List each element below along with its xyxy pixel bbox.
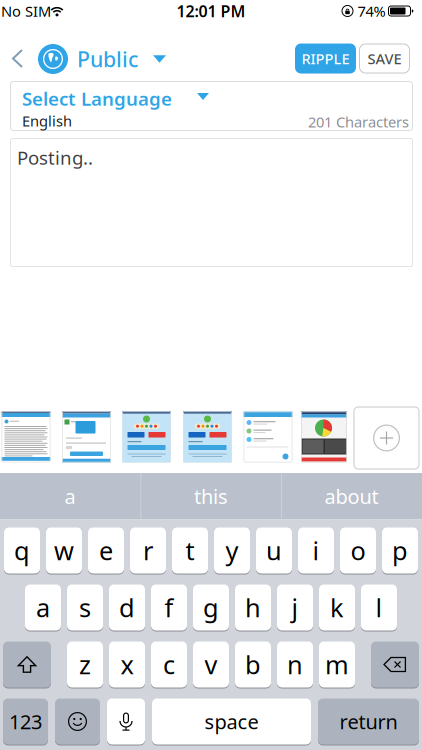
button[interactable]: k bbox=[319, 584, 355, 631]
staticText: k bbox=[330, 591, 344, 624]
button[interactable]: RIPPLE bbox=[295, 43, 356, 73]
button[interactable]: h bbox=[235, 584, 271, 631]
staticText: r bbox=[143, 534, 153, 567]
button[interactable]: o bbox=[340, 527, 376, 574]
staticText: 12:01 PM bbox=[176, 0, 245, 22]
staticText: m bbox=[325, 648, 349, 681]
button[interactable]: about bbox=[282, 473, 420, 519]
button[interactable]: Screenshot 6 bbox=[301, 411, 347, 462]
staticText: 74% bbox=[357, 1, 385, 21]
button[interactable]: Delete bbox=[371, 641, 419, 688]
staticText: f bbox=[164, 591, 173, 624]
button[interactable]: Post text bbox=[10, 138, 413, 267]
staticText: s bbox=[79, 591, 91, 624]
button[interactable]: p bbox=[382, 527, 418, 574]
button[interactable]: this bbox=[142, 473, 280, 519]
button[interactable]: x bbox=[109, 641, 145, 688]
button[interactable]: b bbox=[235, 641, 271, 688]
button[interactable]: j bbox=[277, 584, 313, 631]
button[interactable]: Screenshot 5 bbox=[243, 411, 292, 462]
button[interactable]: Back bbox=[11, 49, 24, 68]
button[interactable]: v bbox=[193, 641, 229, 688]
button[interactable]: Numbers bbox=[3, 698, 48, 745]
staticText: u bbox=[266, 534, 282, 567]
staticText: Select Language bbox=[22, 86, 172, 111]
staticText: h bbox=[245, 591, 261, 624]
button[interactable]: c bbox=[151, 641, 187, 688]
staticText: g bbox=[203, 591, 219, 624]
button[interactable]: w bbox=[46, 527, 82, 574]
button[interactable]: Public bbox=[38, 41, 166, 77]
button[interactable]: Space bbox=[152, 698, 311, 745]
button[interactable]: Dictation bbox=[107, 698, 145, 745]
button[interactable]: t bbox=[172, 527, 208, 574]
staticText: Posting.. bbox=[17, 145, 93, 170]
button[interactable]: z bbox=[67, 641, 103, 688]
staticText: j bbox=[291, 591, 298, 624]
staticText: e bbox=[99, 534, 113, 567]
button[interactable]: Screenshot 3 bbox=[122, 411, 171, 462]
staticText: a bbox=[64, 483, 75, 509]
button[interactable]: s bbox=[67, 584, 103, 631]
staticText: space bbox=[204, 708, 258, 735]
staticText: RIPPLE bbox=[301, 49, 349, 68]
staticText: b bbox=[245, 648, 261, 681]
button[interactable]: Screenshot 1 bbox=[1, 411, 50, 462]
staticText: t bbox=[185, 534, 194, 567]
staticText: a bbox=[36, 591, 50, 624]
button[interactable]: SAVE bbox=[359, 43, 410, 73]
button[interactable]: u bbox=[256, 527, 292, 574]
staticText: this bbox=[194, 483, 228, 509]
button[interactable]: e bbox=[88, 527, 124, 574]
button[interactable]: l bbox=[361, 584, 397, 631]
button[interactable]: Shift bbox=[3, 641, 51, 688]
staticText: i bbox=[312, 534, 319, 567]
button[interactable]: Screenshot 4 bbox=[183, 411, 232, 462]
staticText: v bbox=[204, 648, 217, 681]
staticText: l bbox=[375, 591, 382, 624]
staticText: English bbox=[22, 111, 72, 130]
staticText: n bbox=[287, 648, 303, 681]
button[interactable]: Add photo bbox=[353, 406, 419, 469]
staticText: w bbox=[54, 534, 74, 567]
staticText: 123 bbox=[9, 708, 42, 735]
button[interactable]: n bbox=[277, 641, 313, 688]
button[interactable]: a bbox=[25, 584, 61, 631]
button[interactable]: g bbox=[193, 584, 229, 631]
button[interactable]: Emoji bbox=[55, 698, 100, 745]
staticText: Public bbox=[77, 45, 138, 73]
button[interactable]: q bbox=[4, 527, 40, 574]
button[interactable]: f bbox=[151, 584, 187, 631]
staticText: d bbox=[119, 591, 135, 624]
staticText: about bbox=[324, 483, 378, 509]
button[interactable]: Screenshot 2 bbox=[62, 411, 111, 462]
staticText: o bbox=[350, 534, 365, 567]
button[interactable]: a bbox=[1, 473, 139, 519]
staticText: c bbox=[163, 648, 175, 681]
button[interactable]: d bbox=[109, 584, 145, 631]
button[interactable]: r bbox=[130, 527, 166, 574]
staticText: return bbox=[339, 708, 397, 735]
button[interactable]: Return bbox=[318, 698, 419, 745]
button[interactable]: m bbox=[319, 641, 355, 688]
staticText: p bbox=[392, 534, 408, 567]
staticText: y bbox=[225, 534, 238, 567]
button[interactable]: y bbox=[214, 527, 250, 574]
staticText: x bbox=[120, 648, 133, 681]
button[interactable]: Select Language bbox=[10, 81, 413, 131]
staticText: No SIM bbox=[1, 1, 51, 21]
staticText: SAVE bbox=[367, 49, 401, 68]
button[interactable]: i bbox=[298, 527, 334, 574]
staticText: q bbox=[14, 534, 30, 567]
staticText: 201 Characters bbox=[308, 112, 409, 131]
staticText: z bbox=[79, 648, 91, 681]
